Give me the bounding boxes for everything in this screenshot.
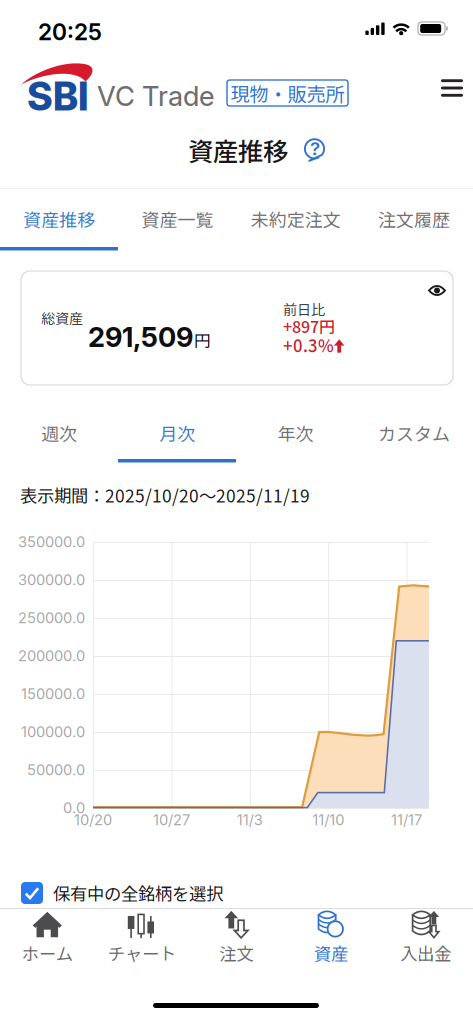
- staticText: 円: [194, 328, 211, 352]
- button[interactable]: 注文: [189, 909, 284, 967]
- staticText: +0.3%: [283, 333, 334, 357]
- button[interactable]: ホーム: [0, 909, 95, 967]
- staticText: 入出金: [400, 940, 451, 966]
- staticText: カスタム: [378, 420, 450, 446]
- staticText: ?: [310, 137, 320, 160]
- staticText: 表示期間：2025/10/20〜2025/11/19: [20, 482, 310, 508]
- button[interactable]: 現物・販売所: [227, 80, 348, 106]
- button[interactable]: チャート: [95, 909, 189, 967]
- staticText: 資産推移: [23, 206, 95, 232]
- staticText: 100000.0: [21, 723, 85, 741]
- staticText: 150000.0: [21, 685, 85, 703]
- staticText: 11/3: [237, 811, 263, 829]
- staticText: 資産: [314, 940, 348, 966]
- staticText: ホーム: [22, 940, 73, 966]
- staticText: 350000.0: [18, 533, 85, 551]
- staticText: SBI: [27, 73, 89, 120]
- staticText: チャート: [108, 940, 176, 966]
- staticText: 250000.0: [18, 609, 85, 627]
- staticText: 291,509: [88, 320, 193, 354]
- button[interactable]: カスタム: [355, 412, 473, 454]
- staticText: 0.0: [63, 799, 85, 817]
- staticText: 50000.0: [27, 761, 85, 779]
- staticText: 300000.0: [18, 571, 85, 589]
- staticText: 11/10: [312, 811, 344, 829]
- staticText: 週次: [41, 420, 77, 446]
- button[interactable]: メニュー: [435, 73, 469, 103]
- button[interactable]: 注文履歴: [355, 189, 473, 249]
- staticText: 20:25: [38, 18, 102, 46]
- staticText: 資産一覧: [141, 206, 213, 232]
- staticText: 10/20: [74, 811, 112, 829]
- staticText: +897円: [283, 314, 335, 338]
- staticText: 前日比: [283, 299, 325, 319]
- staticText: 注文: [219, 940, 253, 966]
- staticText: VC Trade: [97, 79, 215, 113]
- staticText: 200000.0: [18, 647, 85, 665]
- button[interactable]: 未約定注文: [236, 189, 355, 249]
- staticText: 11/17: [391, 811, 422, 829]
- button[interactable]: 資産推移: [0, 189, 118, 249]
- staticText: 総資産: [41, 308, 83, 328]
- staticText: 未約定注文: [251, 206, 341, 232]
- button[interactable]: 年次: [236, 412, 355, 454]
- staticText: 10/27: [153, 811, 190, 829]
- staticText: 年次: [278, 420, 314, 446]
- staticText: 資産推移: [188, 132, 288, 168]
- staticText: 注文履歴: [378, 206, 450, 232]
- button[interactable]: 月次: [118, 412, 236, 454]
- button[interactable]: 週次: [0, 412, 118, 454]
- staticText: 月次: [159, 420, 195, 446]
- button[interactable]: 残高の表示切替: [428, 283, 446, 298]
- button[interactable]: 入出金: [378, 909, 473, 967]
- button[interactable]: 資産: [284, 909, 378, 967]
- staticText: 現物・販売所: [230, 79, 344, 107]
- button[interactable]: 資産一覧: [118, 189, 236, 249]
- button[interactable]: ヘルプ: [303, 138, 327, 162]
- staticText: 保有中の全銘柄を選択: [53, 880, 223, 906]
